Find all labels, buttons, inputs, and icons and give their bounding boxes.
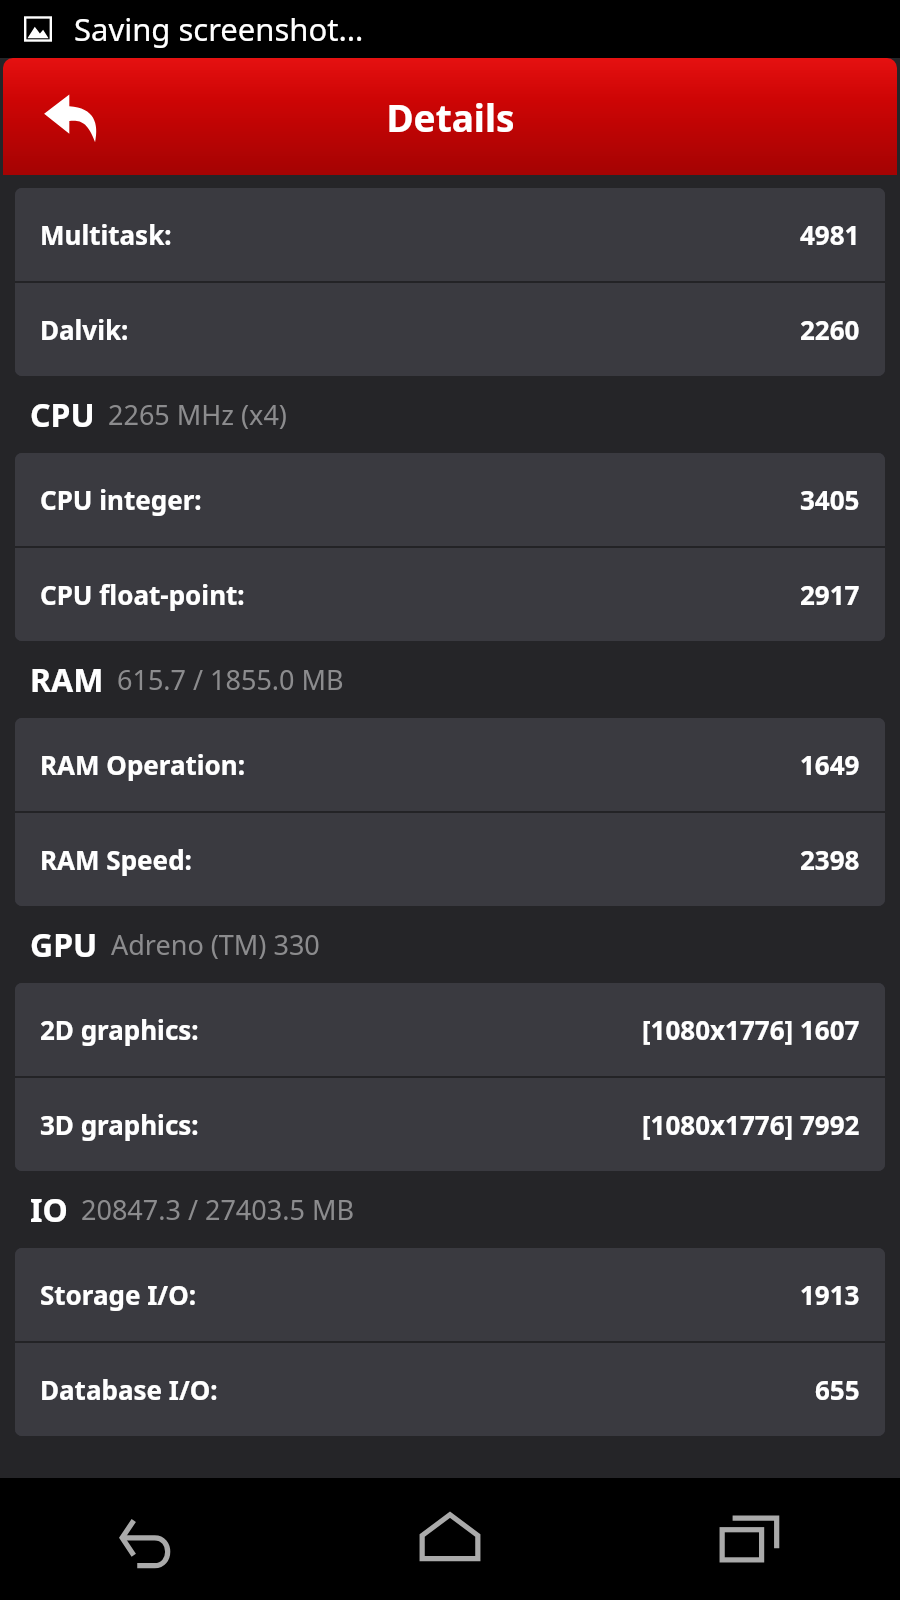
staticText: Database I/O: [40,1372,218,1407]
staticText: 2398 [800,842,860,877]
button[interactable]: 3D graphics: [15,1078,885,1171]
staticText: 4981 [800,217,860,252]
button[interactable]: CPU integer: [15,453,885,546]
staticText: 615.7 / 1855.0 MB [117,661,344,698]
button[interactable]: Multitask: [15,188,885,281]
staticText: Details [386,92,515,142]
button[interactable]: Back [0,1478,300,1600]
staticText: 655 [815,1372,860,1407]
staticText: CPU integer: [40,482,202,517]
staticText: 20847.3 / 27403.5 MB [81,1191,354,1228]
button[interactable]: Storage I/O: [15,1248,885,1341]
staticText: RAM Operation: [40,747,246,782]
button[interactable]: Recent apps [600,1478,900,1600]
staticText: Saving screenshot... [74,8,364,50]
staticText: 1913 [800,1277,860,1312]
button[interactable]: Dalvik: [15,283,885,376]
staticText: 3405 [800,482,860,517]
staticText: Multitask: [40,217,172,252]
button[interactable]: Back [3,58,138,175]
button[interactable]: Home [300,1478,600,1600]
staticText: 2265 MHz (x4) [108,396,287,433]
staticText: 2260 [800,312,860,347]
staticText: 2D graphics: [40,1012,199,1047]
staticText: Adreno (TM) 330 [111,926,320,963]
staticText: RAM [30,658,104,702]
staticText: IO [30,1188,68,1232]
button[interactable]: RAM Operation: [15,718,885,811]
staticText: 1649 [800,747,860,782]
staticText: [1080x1776] 1607 [642,1012,860,1047]
staticText: Dalvik: [40,312,129,347]
staticText: [1080x1776] 7992 [642,1107,860,1142]
button[interactable]: Database I/O: [15,1343,885,1436]
staticText: 2917 [800,577,860,612]
staticText: CPU [30,393,95,437]
button[interactable]: RAM Speed: [15,813,885,906]
staticText: CPU float-point: [40,577,245,612]
button[interactable]: CPU float-point: [15,548,885,641]
button[interactable]: 2D graphics: [15,983,885,1076]
staticText: Storage I/O: [40,1277,197,1312]
staticText: 3D graphics: [40,1107,199,1142]
staticText: RAM Speed: [40,842,192,877]
staticText: GPU [30,923,98,967]
